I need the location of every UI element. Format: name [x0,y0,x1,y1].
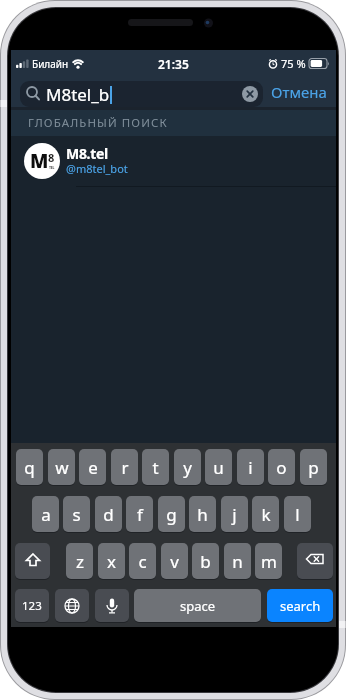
staticText: a [41,503,51,526]
button[interactable]: M8tel_b [20,81,263,107]
button[interactable] [15,543,50,579]
button[interactable]: x [98,543,125,579]
staticText: search [280,597,321,615]
button[interactable]: a [32,496,59,532]
button[interactable]: p [300,449,327,485]
button[interactable]: q [16,449,43,485]
staticText: x [107,550,116,573]
button[interactable]: t [142,449,169,485]
staticText: o [276,456,287,479]
staticText: M8tel_b [46,83,110,106]
staticText: g [166,503,177,526]
staticText: l [295,503,300,526]
button[interactable]: i [237,449,264,485]
staticText: i [248,456,253,479]
staticText: t [152,456,159,479]
staticText: f [137,503,143,526]
button[interactable]: f [126,496,153,532]
button[interactable]: k [252,496,279,532]
button[interactable] [55,589,89,622]
button[interactable]: search [267,589,333,622]
staticText: y [183,456,192,479]
staticText: d [103,503,114,526]
staticText: q [24,456,35,479]
staticText: @m8tel_bot [66,161,128,176]
button[interactable]: c [129,543,156,579]
staticText: p [308,456,319,479]
button[interactable]: j [221,496,248,532]
button[interactable]: v [161,543,188,579]
button[interactable] [95,589,129,622]
button[interactable]: M [11,136,336,186]
button[interactable]: h [189,496,216,532]
staticText: n [232,550,243,573]
staticText: TEL [49,165,55,170]
staticText: 123 [22,598,42,614]
staticText: 75 % [281,56,306,71]
button[interactable]: space [134,589,261,622]
staticText: k [261,503,271,526]
staticText: m [261,550,277,573]
button[interactable]: d [95,496,122,532]
staticText: c [138,550,147,573]
button[interactable]: n [224,543,251,579]
button[interactable]: z [66,543,93,579]
staticText: u [213,456,224,479]
button[interactable] [242,86,258,102]
staticText: h [197,503,208,526]
staticText: s [72,503,81,526]
button[interactable]: o [268,449,295,485]
staticText: M [30,148,48,174]
staticText: ГЛОБАЛЬНЫЙ ПОИСК [28,115,168,131]
button[interactable]: r [111,449,138,485]
button[interactable]: m [255,543,282,579]
button[interactable]: Отмена [271,82,327,102]
staticText: e [88,456,98,479]
staticText: r [121,456,129,479]
staticText: M8.tel [66,144,108,163]
staticText: z [76,550,84,573]
staticText: w [55,456,69,479]
button[interactable]: 123 [15,589,49,622]
button[interactable]: b [192,543,219,579]
button[interactable]: e [79,449,106,485]
staticText: space [180,597,216,615]
staticText: Билайн [32,57,69,71]
staticText: v [170,550,179,573]
staticText: b [200,550,211,573]
button[interactable] [297,543,333,579]
button[interactable]: y [174,449,201,485]
button[interactable]: w [48,449,75,485]
staticText: Отмена [271,82,327,102]
button[interactable]: g [158,496,185,532]
staticText: 21:35 [158,56,189,72]
staticText: 8 [48,150,55,165]
staticText: j [232,503,237,526]
button[interactable]: l [284,496,311,532]
button[interactable]: s [63,496,90,532]
button[interactable]: u [205,449,232,485]
